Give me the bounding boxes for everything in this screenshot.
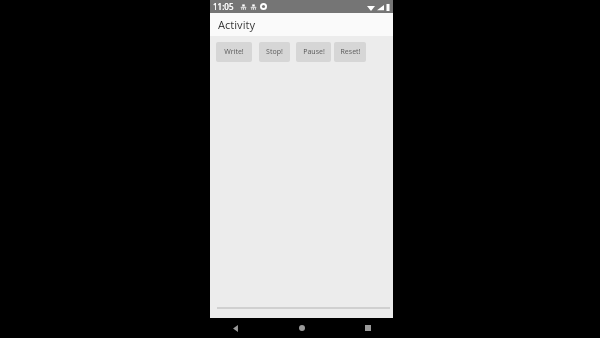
staticText: Pause! [303, 47, 325, 57]
staticText: Reset! [340, 47, 361, 57]
button[interactable]: Back [226, 319, 244, 337]
staticText: Activity [218, 17, 256, 32]
staticText: Stop! [266, 47, 283, 57]
staticText: Write! [224, 47, 244, 57]
button[interactable]: Write! [216, 42, 252, 62]
button[interactable]: Pause! [296, 42, 331, 62]
button[interactable]: Stop! [259, 42, 290, 62]
staticText: 11:05 [213, 1, 234, 12]
button[interactable]: Recent apps [359, 319, 377, 337]
button[interactable]: Reset! [334, 42, 366, 62]
button[interactable]: Home [293, 319, 311, 337]
